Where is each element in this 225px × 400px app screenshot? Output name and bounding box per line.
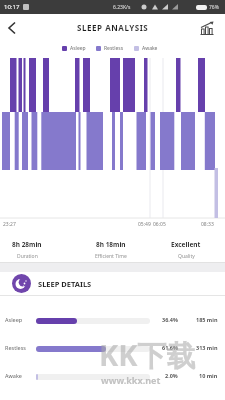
staticText: KK下载 — [99, 335, 196, 375]
staticText: Excellent — [171, 240, 201, 249]
staticText: 10:17 — [4, 3, 20, 11]
staticText: Quality — [178, 253, 195, 260]
staticText: 61.6% — [162, 344, 178, 351]
button[interactable]: Restless — [0, 336, 225, 360]
staticText: Asleep — [5, 316, 23, 323]
button[interactable]: SLEEP DETAILS — [0, 271, 225, 296]
staticText: Duration — [17, 253, 38, 260]
staticText: 05:49 — [138, 221, 151, 228]
button[interactable]: Asleep — [0, 308, 225, 332]
staticText: 06:05 — [153, 221, 166, 228]
button[interactable] — [2, 18, 22, 38]
staticText: 185 min — [196, 316, 218, 323]
staticText: Asleep — [70, 45, 86, 52]
staticText: Restless — [5, 344, 26, 351]
staticText: SLEEP ANALYSIS — [77, 22, 149, 33]
staticText: 8h 18min — [96, 240, 126, 249]
staticText: 313 min — [196, 344, 218, 351]
staticText: 08:33 — [201, 221, 214, 228]
staticText: 36.4% — [162, 316, 178, 323]
staticText: SLEEP DETAILS — [38, 279, 92, 289]
staticText: www.kkx.net — [101, 374, 161, 386]
staticText: 2.0% — [165, 372, 178, 379]
staticText: Awake — [5, 372, 22, 379]
staticText: 76% — [209, 4, 219, 11]
staticText: 23:27 — [3, 221, 16, 228]
staticText: 8h 28min — [12, 240, 42, 249]
staticText: Restless — [104, 45, 124, 52]
button[interactable]: Awake — [0, 364, 225, 388]
staticText: Awake — [142, 45, 158, 52]
staticText: 6.23K/s — [113, 4, 131, 11]
button[interactable] — [196, 17, 218, 39]
staticText: 10 min — [199, 372, 218, 379]
staticText: Efficient Time — [95, 253, 127, 260]
